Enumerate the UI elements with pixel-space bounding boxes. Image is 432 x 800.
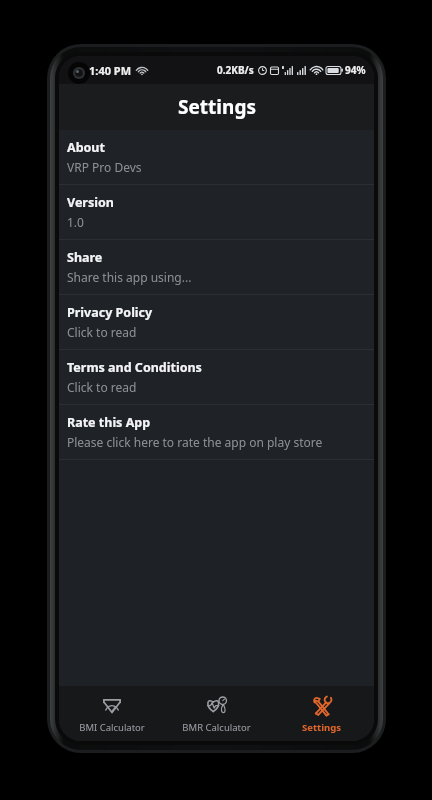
button[interactable]: Terms and Conditions bbox=[59, 350, 374, 404]
staticText: Settings bbox=[178, 94, 256, 120]
button[interactable]: Privacy Policy bbox=[59, 295, 374, 349]
button[interactable]: About bbox=[59, 130, 374, 184]
staticText: About bbox=[67, 139, 105, 156]
staticText: Version bbox=[67, 194, 114, 211]
staticText: Share this app using... bbox=[67, 269, 192, 285]
staticText: 94% bbox=[345, 63, 366, 77]
staticText: Settings bbox=[302, 721, 341, 734]
staticText: Click to read bbox=[67, 379, 137, 395]
staticText: Rate this App bbox=[67, 414, 151, 431]
staticText: Click to read bbox=[67, 324, 137, 340]
staticText: Terms and Conditions bbox=[67, 359, 202, 376]
button[interactable]: Share bbox=[59, 240, 374, 294]
button[interactable]: BMI Calculator bbox=[59, 686, 164, 741]
staticText: Please click here to rate the app on pla… bbox=[67, 434, 323, 450]
staticText: VRP Pro Devs bbox=[67, 159, 142, 175]
button[interactable]: Version bbox=[59, 185, 374, 239]
button[interactable]: Rate this App bbox=[59, 405, 374, 459]
staticText: Share bbox=[67, 249, 103, 266]
staticText: 1.0 bbox=[67, 214, 84, 230]
staticText: Privacy Policy bbox=[67, 304, 153, 321]
staticText: 0.2KB/s bbox=[217, 63, 254, 77]
staticText: 1:40 PM bbox=[89, 63, 132, 78]
button[interactable]: Settings bbox=[269, 686, 374, 741]
staticText: BMR Calculator bbox=[182, 721, 251, 734]
staticText: BMI Calculator bbox=[79, 721, 145, 734]
button[interactable]: BMR Calculator bbox=[164, 686, 269, 741]
